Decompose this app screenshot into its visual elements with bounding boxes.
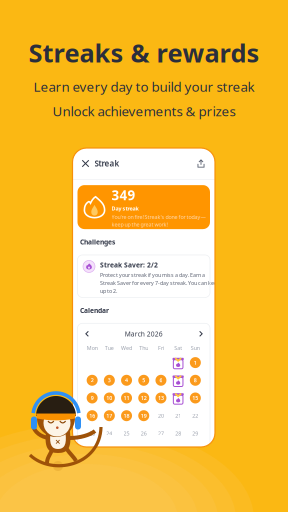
staticText: 17	[106, 412, 112, 419]
staticText: 4	[125, 377, 128, 384]
staticText: 10	[106, 394, 112, 401]
staticText: Wed	[121, 344, 132, 351]
button[interactable]: Share	[194, 156, 208, 170]
staticText: 25	[123, 430, 129, 437]
staticText: Streak Saver for every 7-day streak. You…	[100, 279, 220, 286]
staticText: 18	[123, 412, 129, 419]
staticText: 6	[159, 377, 162, 384]
staticText: 13	[158, 394, 164, 401]
staticText: 5	[142, 377, 145, 384]
staticText: 8	[194, 377, 197, 384]
staticText: You're on fire! Streak's done for today—	[111, 213, 205, 220]
staticText: Sat	[174, 344, 182, 351]
staticText: 15	[192, 394, 198, 401]
staticText: Challenges	[80, 238, 115, 246]
staticText: 349	[111, 186, 135, 204]
staticText: 27	[158, 430, 164, 437]
staticText: Tue	[105, 344, 114, 351]
button[interactable]: Previous month	[81, 328, 92, 339]
staticText: 12	[141, 394, 147, 401]
button[interactable]: Streak Saver: 2/2	[77, 255, 210, 297]
staticText: 9	[91, 394, 94, 401]
button[interactable]: Next month	[195, 328, 206, 339]
staticText: Thu	[139, 344, 148, 351]
staticText: Streak	[94, 158, 119, 169]
staticText: Unlock achievements & prizes	[52, 102, 235, 120]
staticText: Protect your streak if you miss a day. E…	[100, 271, 205, 279]
staticText: 2	[91, 377, 94, 384]
staticText: 22	[192, 412, 198, 419]
staticText: Learn every day to build your streak	[33, 78, 254, 95]
staticText: Streaks & rewards	[28, 36, 259, 70]
staticText: 26	[141, 430, 147, 437]
staticText: March 2026	[125, 329, 163, 338]
staticText: 29	[192, 430, 198, 437]
staticText: 28	[175, 430, 181, 437]
staticText: 24	[106, 430, 112, 437]
staticText: keep up the great work!	[111, 221, 167, 228]
staticText: 23	[89, 430, 95, 437]
staticText: up to 2.	[100, 287, 117, 294]
staticText: 16	[89, 412, 95, 419]
staticText: 21	[175, 412, 181, 419]
staticText: Fri	[158, 344, 164, 351]
staticText: Calendar	[80, 306, 109, 315]
staticText: 11	[123, 394, 129, 401]
staticText: 1	[194, 359, 197, 366]
staticText: Mon	[87, 344, 98, 351]
button[interactable]: Close	[78, 156, 92, 170]
staticText: 20	[158, 412, 164, 419]
staticText: Streak Saver: 2/2	[100, 260, 158, 269]
staticText: Sun	[191, 344, 200, 351]
staticText: Day streak	[111, 205, 138, 212]
staticText: 19	[141, 412, 147, 419]
staticText: 3	[108, 377, 111, 384]
